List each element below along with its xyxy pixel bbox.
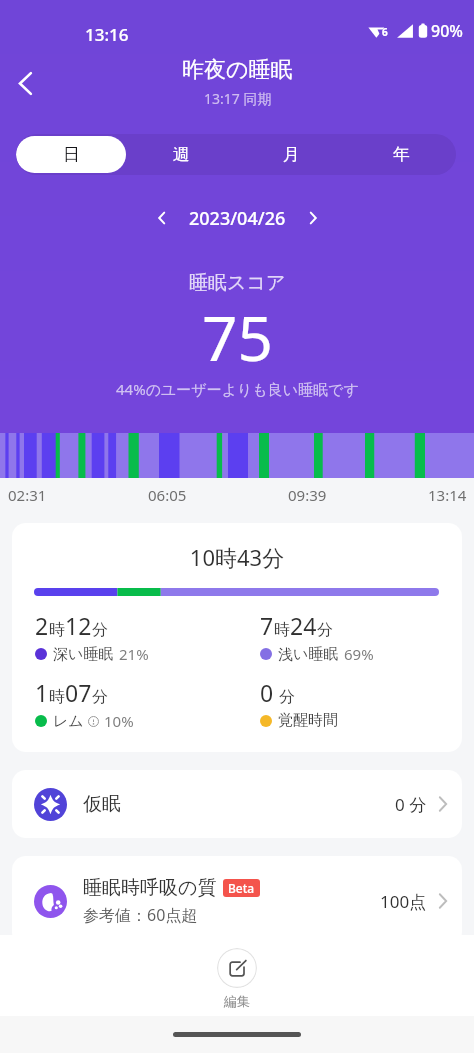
staticText: 睡眠スコア (189, 271, 286, 295)
button[interactable]: 年 (346, 136, 456, 173)
staticText: 深い睡眠 (53, 645, 114, 664)
staticText: 分 (279, 687, 295, 707)
staticText: 0 (260, 677, 274, 708)
button[interactable]: 月 (236, 136, 346, 173)
staticText: 分 (92, 620, 108, 640)
button[interactable]: 戻る (1, 59, 49, 107)
staticText: 日 (63, 144, 80, 165)
staticText: 1 (35, 677, 49, 708)
button[interactable]: 編集 (217, 948, 257, 1009)
staticText: 13:17 同期 (204, 89, 272, 108)
staticText: 時 (49, 687, 65, 707)
staticText: 分 (317, 620, 333, 640)
staticText: 100点 (380, 890, 427, 913)
staticText: 年 (393, 144, 410, 165)
staticText: 21% (119, 644, 149, 664)
staticText: 2 (35, 610, 49, 641)
button[interactable]: 週 (126, 136, 236, 173)
button[interactable]: 日 (16, 136, 126, 173)
staticText: 13:14 (428, 485, 467, 505)
staticText: 09:39 (288, 485, 327, 505)
staticText: 44%のユーザーよりも良い睡眠です (116, 379, 359, 399)
staticText: 69% (344, 644, 374, 664)
staticText: 昨夜の睡眠 (182, 56, 293, 84)
staticText: 分 (92, 687, 108, 707)
staticText: 2023/04/26 (189, 206, 286, 231)
staticText: 時 (274, 620, 290, 640)
staticText: 07 (65, 677, 92, 708)
staticText: 02:31 (8, 485, 47, 505)
staticText: 覚醒時間 (278, 711, 338, 730)
staticText: 90% (431, 20, 463, 42)
staticText: 仮眠 (83, 792, 121, 816)
staticText: 7 (260, 610, 274, 641)
staticText: 参考値：60点超 (83, 904, 198, 926)
button[interactable]: 次の日 (296, 201, 330, 235)
staticText: 週 (173, 144, 190, 165)
staticText: 月 (283, 144, 300, 165)
staticText: 12 (65, 610, 92, 641)
staticText: 時 (49, 620, 65, 640)
staticText: 6 (382, 25, 388, 39)
staticText: 24 (290, 610, 317, 641)
staticText: 13:16 (85, 23, 129, 46)
staticText: Beta (228, 880, 255, 896)
button[interactable]: 睡眠時呼吸の質 (12, 856, 462, 946)
button[interactable]: 仮眠 (12, 770, 462, 838)
staticText: 10% (104, 711, 134, 731)
staticText: レム (53, 712, 84, 731)
staticText: 75 (202, 295, 273, 379)
button[interactable]: 10時43分 (12, 523, 462, 752)
staticText: 0 分 (395, 793, 427, 816)
staticText: 浅い睡眠 (278, 645, 339, 664)
staticText: 10時43分 (12, 542, 462, 572)
staticText: 編集 (224, 993, 250, 1009)
staticText: 06:05 (148, 485, 187, 505)
button[interactable]: 前の日 (145, 201, 179, 235)
staticText: 睡眠時呼吸の質 (83, 876, 217, 900)
